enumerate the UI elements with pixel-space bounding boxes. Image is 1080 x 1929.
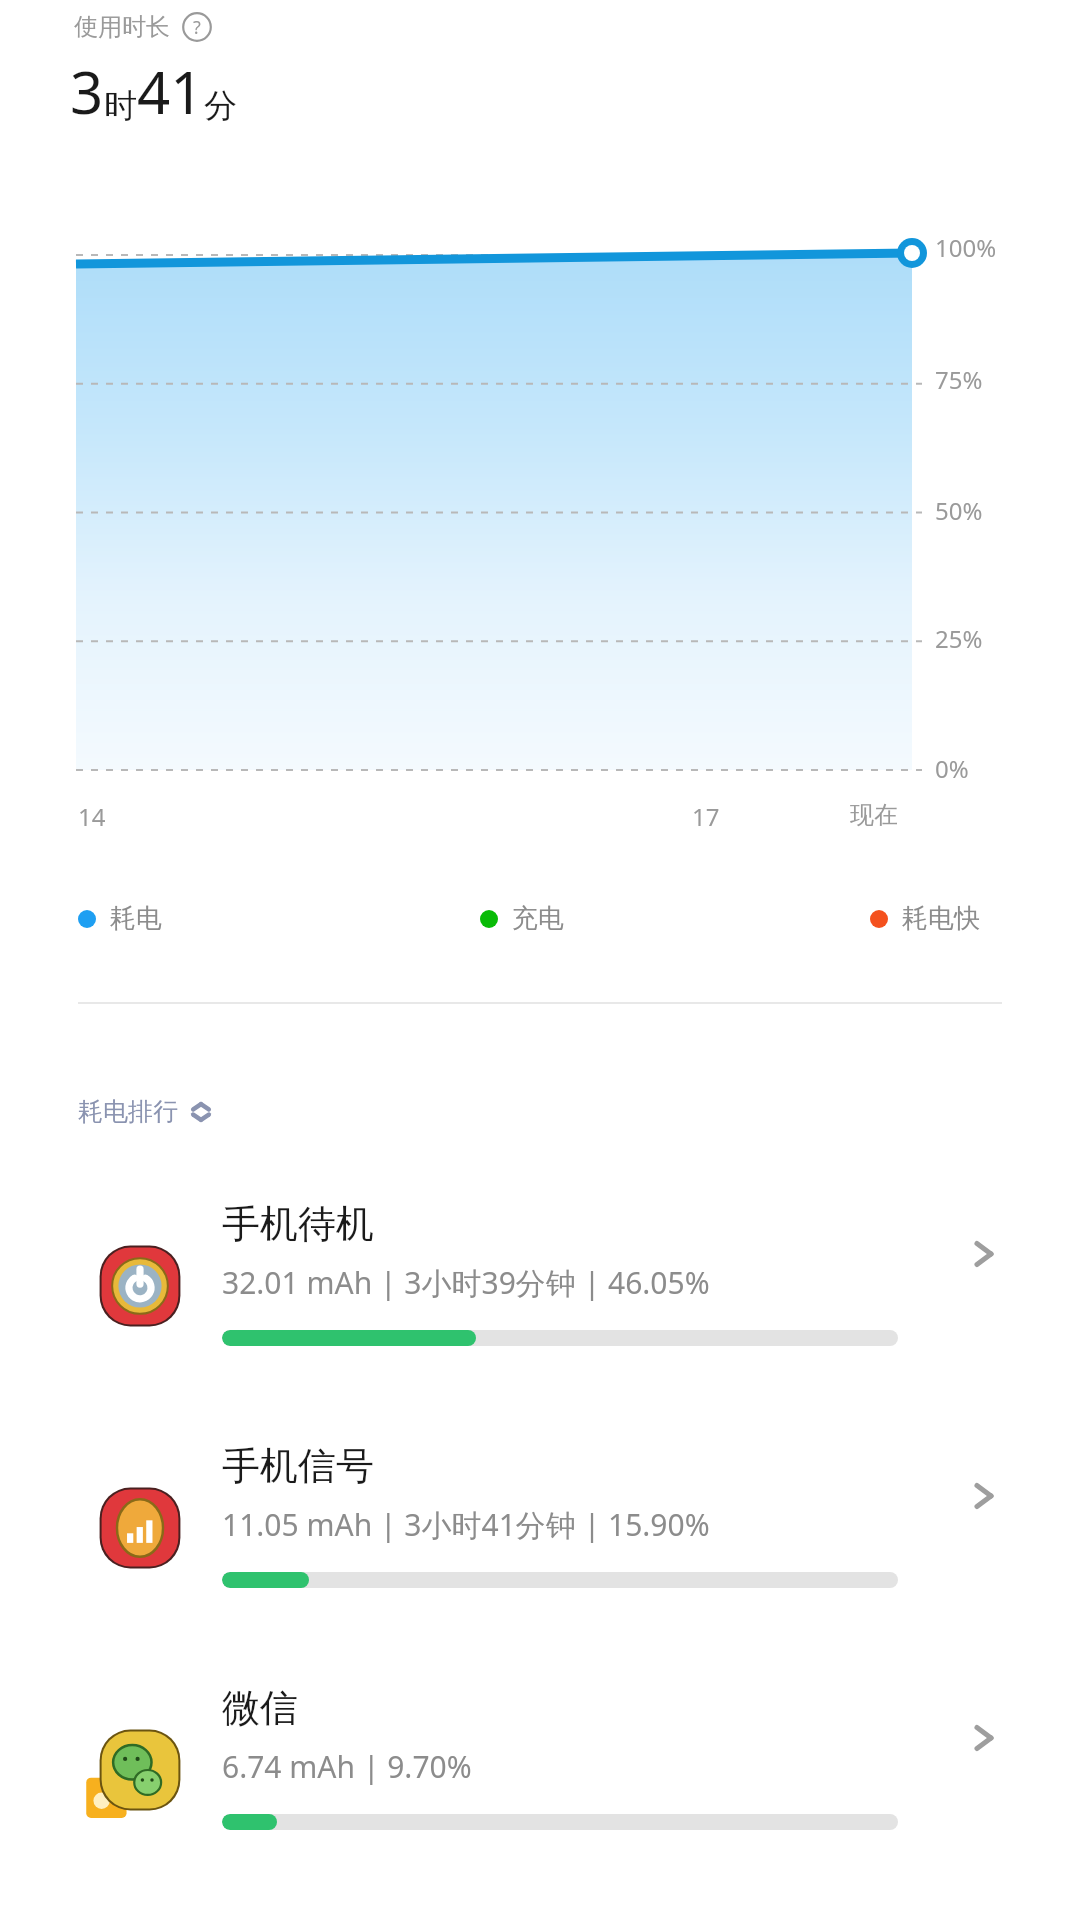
staticText: 6.74 mAh | 9.70% (222, 1746, 472, 1787)
staticText: 100% (935, 231, 997, 264)
button[interactable]: 手机待机 (0, 1190, 1080, 1422)
other: 查看详情 (962, 1474, 1006, 1518)
staticText: 分 (204, 85, 237, 127)
other: 查看详情 (962, 1232, 1006, 1276)
staticText: 0% (935, 752, 969, 785)
staticText: 时 (104, 85, 137, 127)
staticText: 手机信号 (222, 1442, 374, 1490)
button[interactable]: 耗电 (78, 898, 162, 939)
button[interactable]: 使用时长 (72, 10, 214, 44)
other: 排序 (188, 1099, 214, 1125)
staticText: 11.05 mAh | 3小时41分钟 | 15.90% (222, 1504, 710, 1545)
staticText: 耗电排行 (78, 1096, 178, 1127)
staticText: 41 (137, 52, 204, 131)
staticText: 充电 (512, 902, 564, 935)
other: 查看详情 (962, 1716, 1006, 1760)
staticText: 现在 (850, 800, 898, 830)
button[interactable]: 微信 (0, 1674, 1080, 1906)
staticText: 75% (935, 363, 983, 396)
button[interactable]: 耗电快 (870, 898, 980, 939)
button[interactable]: 充电 (480, 898, 564, 939)
staticText: 32.01 mAh | 3小时39分钟 | 46.05% (222, 1262, 710, 1303)
staticText: ? (193, 15, 201, 40)
staticText: 使用时长 (74, 12, 170, 42)
staticText: 50% (935, 494, 983, 527)
staticText: 手机待机 (222, 1200, 374, 1248)
staticText: 微信 (222, 1684, 298, 1732)
staticText: 耗电 (110, 902, 162, 935)
staticText: 25% (935, 622, 983, 655)
staticText: 17 (692, 800, 720, 833)
button[interactable]: 耗电排行 (74, 1092, 218, 1131)
staticText: 3 (70, 52, 104, 131)
button[interactable]: 手机信号 (0, 1432, 1080, 1664)
other: 帮助 (182, 12, 212, 42)
staticText: 耗电快 (902, 902, 980, 935)
staticText: 14 (78, 800, 106, 833)
